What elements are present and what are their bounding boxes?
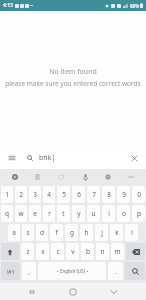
- button[interactable]: !#1: [1, 262, 20, 280]
- button[interactable]: m: [111, 243, 124, 260]
- button[interactable]: 5: [57, 186, 70, 203]
- button[interactable]: z: [21, 243, 34, 260]
- staticText: c: [56, 247, 60, 256]
- button[interactable]: Collapse: [124, 170, 138, 184]
- staticText: 3: [33, 190, 37, 199]
- button[interactable]: Clear: [128, 152, 140, 164]
- staticText: t: [62, 209, 65, 218]
- staticText: y: [77, 209, 81, 218]
- button[interactable]: g: [65, 224, 78, 241]
- button[interactable]: v: [66, 243, 79, 260]
- button[interactable]: r: [43, 205, 55, 222]
- button[interactable]: a: [8, 224, 20, 241]
- button[interactable]: Menu: [6, 152, 18, 164]
- staticText: n: [100, 247, 105, 256]
- button[interactable]: Back: [105, 283, 123, 300]
- button[interactable]: p: [132, 205, 145, 222]
- staticText: m: [114, 247, 121, 256]
- button[interactable]: ,: [22, 262, 36, 280]
- button[interactable]: y: [72, 205, 85, 222]
- staticText: u: [91, 209, 96, 218]
- button[interactable]: l: [125, 224, 138, 241]
- staticText: 2: [19, 190, 23, 199]
- staticText: g: [70, 228, 74, 237]
- button[interactable]: Search: [24, 152, 36, 164]
- staticText: v: [71, 247, 75, 256]
- staticText: r: [48, 209, 51, 218]
- staticText: s: [26, 228, 30, 237]
- staticText: q: [5, 209, 9, 218]
- staticText: k: [115, 228, 119, 237]
- button[interactable]: h: [80, 224, 93, 241]
- staticText: z: [26, 247, 30, 256]
- staticText: please make sure you entered correct wor…: [5, 79, 141, 88]
- button[interactable]: f: [50, 224, 63, 241]
- button[interactable]: b: [81, 243, 94, 260]
- button[interactable]: t: [57, 205, 70, 222]
- staticText: 1: [5, 190, 9, 199]
- button[interactable]: Home: [64, 283, 82, 300]
- staticText: h: [84, 228, 89, 237]
- button[interactable]: u: [87, 205, 100, 222]
- button[interactable]: j: [95, 224, 108, 241]
- staticText: No item found: [49, 67, 97, 77]
- button[interactable]: 3: [29, 186, 41, 203]
- button[interactable]: k: [110, 224, 123, 241]
- staticText: bhk: [39, 153, 52, 163]
- button[interactable]: q: [1, 205, 13, 222]
- button[interactable]: 8: [102, 186, 115, 203]
- button[interactable]: 7: [87, 186, 100, 203]
- button[interactable]: 6: [72, 186, 85, 203]
- staticText: x: [41, 247, 45, 256]
- button[interactable]: Search: [125, 262, 145, 280]
- button[interactable]: Emoji: [8, 170, 22, 184]
- button[interactable]: 1: [1, 186, 13, 203]
- button[interactable]: i: [102, 205, 115, 222]
- button[interactable]: .: [108, 262, 123, 280]
- button[interactable]: s: [22, 224, 34, 241]
- button[interactable]: Shift: [1, 243, 19, 260]
- button[interactable]: o: [117, 205, 130, 222]
- staticText: 9: [122, 190, 126, 199]
- button[interactable]: Recents: [23, 283, 41, 300]
- staticText: 4: [47, 190, 51, 199]
- button[interactable]: English (US): [38, 262, 106, 280]
- button[interactable]: 2: [15, 186, 27, 203]
- button[interactable]: w: [15, 205, 27, 222]
- staticText: ,: [28, 267, 30, 276]
- staticText: !#1: [6, 268, 15, 275]
- button[interactable]: Backspace: [126, 243, 145, 260]
- staticText: 5: [62, 190, 66, 199]
- staticText: p: [137, 209, 141, 218]
- button[interactable]: x: [36, 243, 49, 260]
- staticText: b: [86, 247, 90, 256]
- button[interactable]: d: [36, 224, 48, 241]
- button[interactable]: 9: [117, 186, 130, 203]
- button[interactable]: c: [51, 243, 64, 260]
- staticText: 7: [92, 190, 96, 199]
- button[interactable]: Voice input: [78, 170, 92, 184]
- button[interactable]: 0: [132, 186, 145, 203]
- staticText: j: [101, 228, 103, 237]
- staticText: .: [115, 267, 117, 276]
- staticText: 8: [107, 190, 111, 199]
- button[interactable]: 4: [43, 186, 55, 203]
- staticText: o: [122, 209, 126, 218]
- button[interactable]: Stickers: [54, 170, 68, 184]
- button[interactable]: Settings: [101, 170, 115, 184]
- staticText: l: [131, 228, 133, 237]
- staticText: 6: [77, 190, 81, 199]
- button[interactable]: n: [96, 243, 109, 260]
- staticText: w: [18, 209, 24, 218]
- staticText: f: [55, 228, 58, 237]
- button[interactable]: Clipboard: [31, 170, 45, 184]
- staticText: e: [33, 209, 37, 218]
- staticText: 68%: [130, 3, 139, 9]
- button[interactable]: e: [29, 205, 41, 222]
- staticText: 4:13: [3, 2, 13, 9]
- staticText: i: [108, 209, 110, 218]
- staticText: 0: [137, 190, 141, 199]
- staticText: a: [12, 228, 16, 237]
- staticText: English (US): [60, 268, 85, 274]
- staticText: d: [40, 228, 44, 237]
